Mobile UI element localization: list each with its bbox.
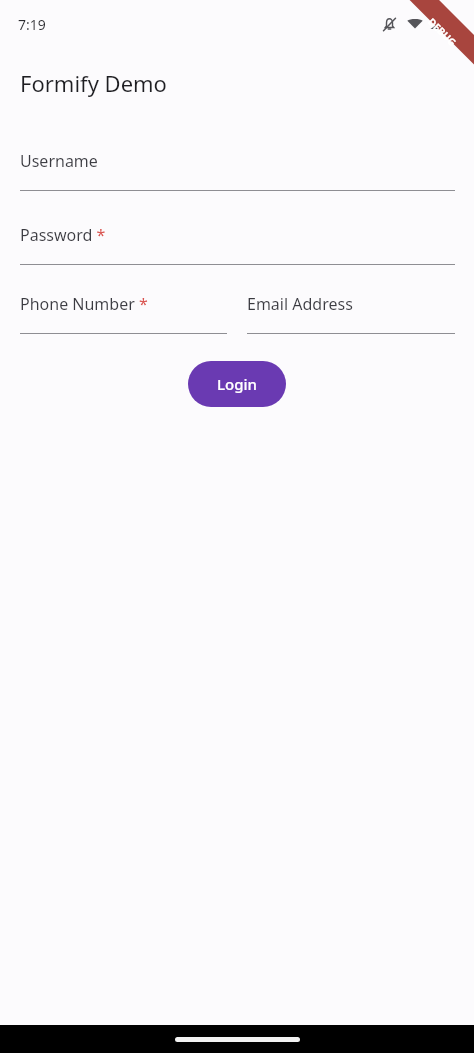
other: Debug build banner (382, 0, 474, 92)
staticText: Password * (20, 224, 106, 246)
staticText: Login (217, 374, 257, 394)
staticText: Email Address (247, 293, 353, 315)
button[interactable]: Phone Number * (20, 293, 227, 334)
button[interactable]: Username (20, 150, 455, 191)
staticText: Phone Number * (20, 293, 148, 315)
staticText: 7:19 (18, 15, 46, 34)
staticText: Formify Demo (20, 68, 167, 98)
staticText: DEBUG (425, 15, 460, 49)
button[interactable]: Password * (20, 224, 455, 265)
button[interactable]: Email Address (247, 293, 455, 334)
button[interactable]: Login (188, 361, 286, 407)
staticText: Username (20, 150, 98, 172)
